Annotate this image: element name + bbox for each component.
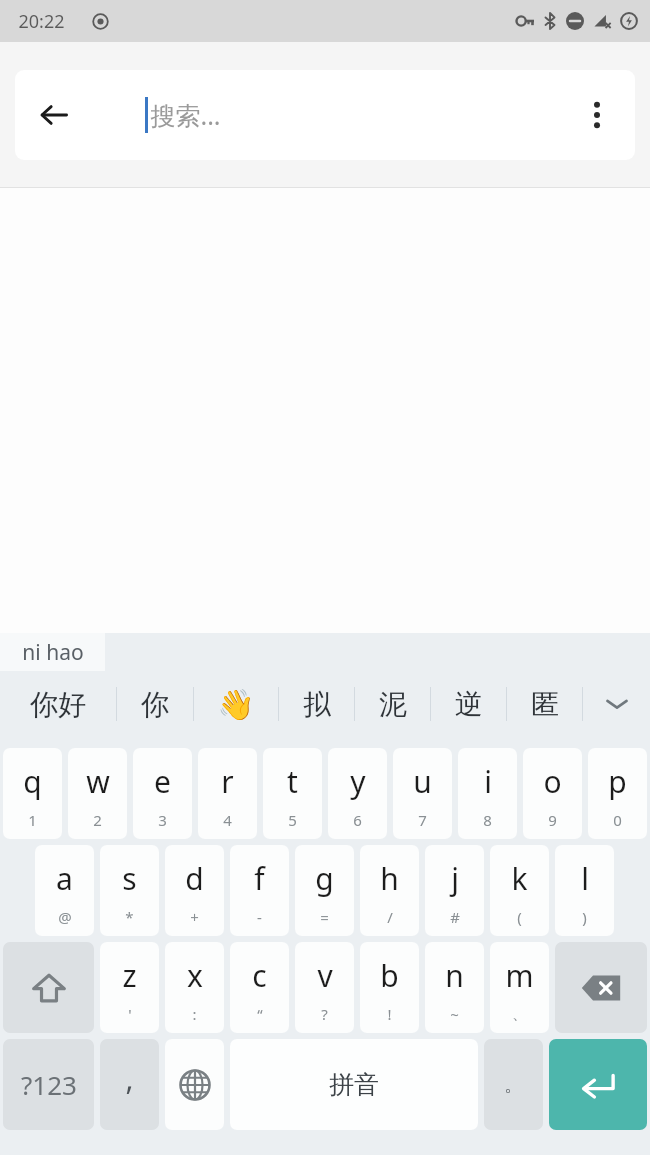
button[interactable]: 泥 xyxy=(355,671,430,737)
staticText: ( xyxy=(517,907,522,927)
staticText: @ xyxy=(58,907,72,927)
staticText: 你 xyxy=(141,687,169,722)
staticText: 3 xyxy=(158,810,167,830)
staticText: 搜索... xyxy=(150,98,221,132)
button[interactable]: c xyxy=(230,942,289,1033)
staticText: 1 xyxy=(28,810,37,830)
button[interactable]: Shift xyxy=(3,942,94,1033)
button[interactable]: 。 xyxy=(484,1039,543,1130)
staticText: ! xyxy=(387,1004,392,1024)
button[interactable]: u xyxy=(393,748,452,839)
staticText: z xyxy=(122,955,137,996)
staticText: 泥 xyxy=(379,687,407,722)
button[interactable]: 👋 xyxy=(194,671,278,737)
staticText: 6 xyxy=(353,810,362,830)
staticText: 4 xyxy=(223,810,232,830)
staticText: y xyxy=(350,761,366,802)
button[interactable]: e xyxy=(133,748,192,839)
button[interactable]: v xyxy=(295,942,354,1033)
button[interactable]: o xyxy=(523,748,582,839)
staticText: 逆 xyxy=(455,687,483,722)
staticText: “ xyxy=(257,1004,263,1024)
button[interactable]: , xyxy=(100,1039,159,1130)
button[interactable]: ni hao xyxy=(0,633,105,671)
staticText: ~ xyxy=(450,1004,459,1024)
button[interactable]: x xyxy=(165,942,224,1033)
staticText: 5 xyxy=(288,810,297,830)
button[interactable]: m xyxy=(490,942,549,1033)
button[interactable]: More options xyxy=(569,87,625,143)
button[interactable]: j xyxy=(425,845,484,936)
button[interactable]: Change keyboard language xyxy=(165,1039,224,1130)
staticText: 。 xyxy=(504,1073,523,1097)
staticText: d xyxy=(185,858,204,899)
button[interactable]: d xyxy=(165,845,224,936)
staticText: c xyxy=(252,955,267,996)
button[interactable]: Back xyxy=(23,84,85,146)
button[interactable]: s xyxy=(100,845,159,936)
button[interactable]: 拼音 xyxy=(230,1039,478,1130)
staticText: , xyxy=(125,1058,134,1099)
staticText: 9 xyxy=(548,810,557,830)
staticText: 拼音 xyxy=(329,1069,379,1100)
staticText: a xyxy=(56,858,73,899)
button[interactable]: f xyxy=(230,845,289,936)
button[interactable]: q xyxy=(3,748,62,839)
staticText: h xyxy=(380,858,399,899)
staticText: 2 xyxy=(93,810,102,830)
button[interactable]: z xyxy=(100,942,159,1033)
button[interactable]: k xyxy=(490,845,549,936)
staticText: 、 xyxy=(512,1005,527,1024)
staticText: ?123 xyxy=(21,1067,77,1102)
staticText: l xyxy=(581,858,589,899)
button[interactable]: Expand candidates xyxy=(583,671,650,737)
button[interactable]: Enter xyxy=(549,1039,647,1130)
staticText: x xyxy=(187,955,203,996)
staticText: : xyxy=(192,1004,197,1024)
staticText: k xyxy=(511,858,528,899)
button[interactable]: a xyxy=(35,845,94,936)
button[interactable]: 逆 xyxy=(431,671,506,737)
staticText: = xyxy=(320,907,329,927)
staticText: # xyxy=(450,907,460,927)
staticText: j xyxy=(451,858,459,899)
button[interactable]: 拟 xyxy=(279,671,354,737)
staticText: b xyxy=(380,955,399,996)
staticText: r xyxy=(221,761,234,802)
button[interactable]: l xyxy=(555,845,614,936)
button[interactable]: y xyxy=(328,748,387,839)
staticText: 拟 xyxy=(303,687,331,722)
staticText: 7 xyxy=(418,810,427,830)
button[interactable]: 匿 xyxy=(507,671,582,737)
staticText: 👋 xyxy=(217,687,255,722)
staticText: / xyxy=(387,907,393,927)
staticText: n xyxy=(445,955,464,996)
button[interactable]: i xyxy=(458,748,517,839)
button[interactable]: h xyxy=(360,845,419,936)
staticText: ) xyxy=(582,907,587,927)
staticText: s xyxy=(122,858,137,899)
button[interactable]: b xyxy=(360,942,419,1033)
button[interactable]: 你好 xyxy=(0,671,116,737)
staticText: ni hao xyxy=(22,638,84,667)
staticText: i xyxy=(484,761,492,802)
button[interactable]: g xyxy=(295,845,354,936)
button[interactable]: 你 xyxy=(117,671,193,737)
staticText: u xyxy=(413,761,432,802)
button[interactable]: Backspace xyxy=(555,942,647,1033)
staticText: 匿 xyxy=(531,687,559,722)
button[interactable]: t xyxy=(263,748,322,839)
staticText: q xyxy=(23,761,42,802)
staticText: + xyxy=(190,907,199,927)
staticText: g xyxy=(315,858,334,899)
button[interactable]: ?123 xyxy=(3,1039,94,1130)
staticText: 8 xyxy=(483,810,492,830)
button[interactable]: r xyxy=(198,748,257,839)
button[interactable]: p xyxy=(588,748,647,839)
staticText: o xyxy=(543,761,562,802)
staticText: v xyxy=(317,955,333,996)
button[interactable]: w xyxy=(68,748,127,839)
staticText: 你好 xyxy=(30,687,86,722)
staticText: * xyxy=(125,907,134,927)
button[interactable]: n xyxy=(425,942,484,1033)
